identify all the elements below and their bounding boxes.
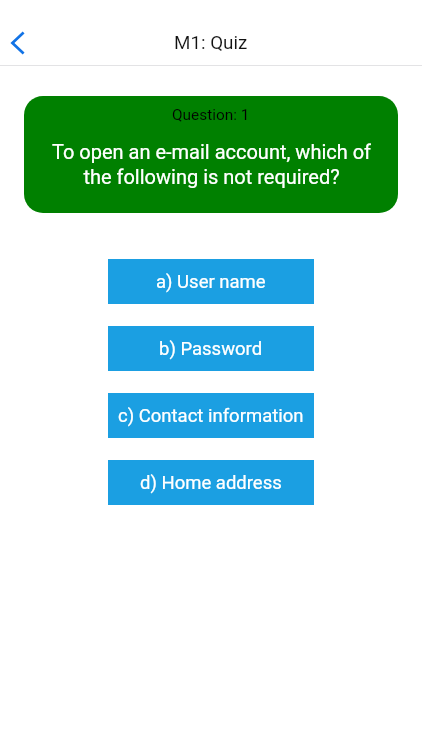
button[interactable]: c) Contact information [108,393,314,438]
staticText: M1: Quiz [174,32,248,54]
staticText: b) Password [159,338,263,360]
staticText: Question: 1 [172,106,250,124]
button[interactable]: b) Password [108,326,314,371]
button[interactable]: a) User name [108,259,314,304]
button[interactable]: Back [0,21,40,65]
staticText: a) User name [156,271,266,293]
staticText: d) Home address [140,472,282,494]
staticText: c) Contact information [118,405,304,427]
button[interactable]: d) Home address [108,460,314,505]
staticText: To open an e-mail account, which of the … [39,140,384,189]
